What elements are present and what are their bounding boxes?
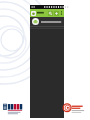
button[interactable]: More options [60, 9, 63, 17]
button[interactable]: Add [54, 11, 59, 16]
other: App icon [31, 11, 36, 16]
button[interactable]: App icon [30, 9, 64, 17]
button[interactable]: Search [48, 11, 53, 16]
button[interactable] [30, 17, 64, 26]
